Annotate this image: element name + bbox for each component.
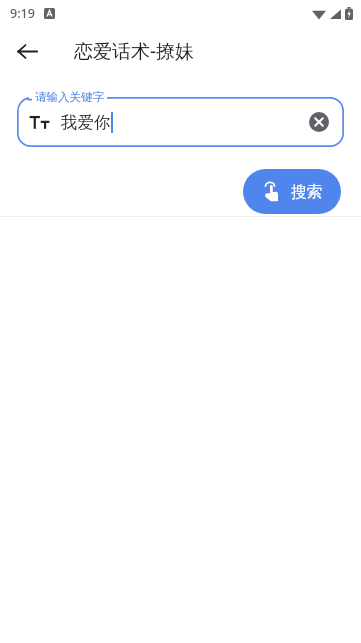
staticText: 我爱你 [61, 112, 111, 133]
button[interactable]: Back [8, 32, 46, 70]
button[interactable]: 搜索 [243, 169, 341, 214]
staticText: 恋爱话术-撩妹 [74, 38, 195, 64]
staticText: 请输入关键字 [35, 90, 104, 104]
button[interactable]: Clear [304, 107, 334, 137]
staticText: 9:19 [10, 5, 35, 22]
staticText: 搜索 [291, 182, 322, 202]
